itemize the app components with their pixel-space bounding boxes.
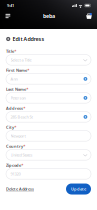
- staticText: Last Name: [6, 86, 26, 92]
- staticText: *: [23, 105, 25, 111]
- staticText: *: [23, 143, 25, 149]
- button[interactable]: Menu: [0, 11, 16, 21]
- button[interactable]: 285 Beach St: [6, 112, 91, 122]
- staticText: United States: [10, 152, 32, 157]
- button[interactable]: Delete Address: [6, 184, 36, 194]
- staticText: Peterson: [10, 95, 25, 100]
- staticText: *: [26, 86, 28, 92]
- staticText: Country: [6, 143, 23, 149]
- staticText: Edit Address: [12, 35, 44, 43]
- staticText: Address: [6, 105, 23, 111]
- staticText: beba: [43, 12, 55, 20]
- button[interactable]: Newport: [6, 131, 91, 141]
- staticText: 285 Beach St: [10, 114, 32, 119]
- staticText: 9:41: [7, 3, 14, 8]
- staticText: Delete Address: [6, 186, 34, 192]
- button[interactable]: Peterson: [6, 93, 91, 103]
- button[interactable]: Select a Title: [6, 55, 91, 65]
- staticText: *: [14, 48, 16, 54]
- button[interactable]: United States: [6, 150, 91, 160]
- staticText: Ann: [10, 76, 17, 81]
- button[interactable]: Update: [66, 183, 91, 194]
- staticText: Select a Title: [10, 57, 31, 62]
- button[interactable]: Cart: [81, 11, 97, 21]
- staticText: *: [14, 124, 16, 130]
- staticText: Title: [6, 48, 14, 54]
- staticText: Zipcode: [6, 162, 21, 168]
- staticText: City: [6, 124, 14, 130]
- staticText: *: [27, 67, 29, 73]
- staticText: First Name: [6, 67, 27, 73]
- staticText: Update: [71, 186, 86, 192]
- staticText: Newport: [10, 133, 25, 138]
- staticText: 91320: [10, 171, 20, 176]
- button[interactable]: Ann: [6, 74, 91, 84]
- button[interactable]: 91320: [6, 169, 91, 179]
- staticText: *: [21, 162, 23, 168]
